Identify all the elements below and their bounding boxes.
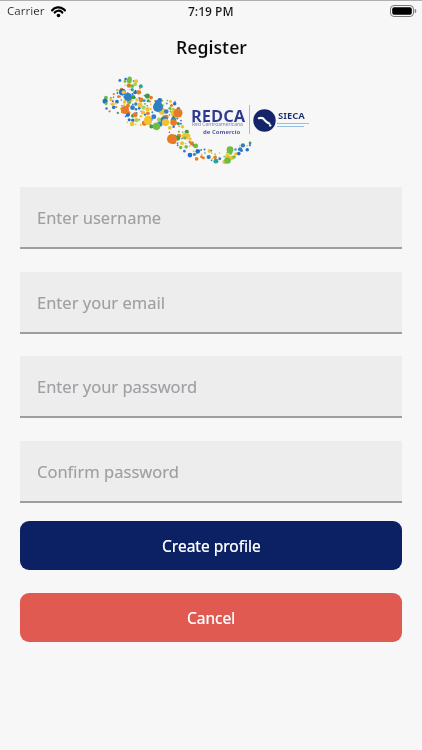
staticText: Confirm password [37,460,179,482]
button[interactable]: Confirm password [20,441,402,501]
staticText: Red Centroamericana [192,121,243,128]
staticText: Register [176,35,247,59]
staticText: REDCA [191,104,246,126]
staticText: Enter your email [37,291,165,313]
button[interactable]: Create profile [20,521,402,570]
staticText: Enter your password [37,375,198,397]
staticText: 7:19 PM [188,3,234,19]
staticText: Carrier [7,3,45,19]
staticText: Enter username [37,206,162,228]
button[interactable]: Enter your email [20,272,402,332]
button[interactable]: Enter your password [20,356,402,416]
staticText: Cancel [187,607,236,628]
staticText: de Comercio [203,128,241,136]
staticText: SIECA [278,109,305,122]
button[interactable]: Cancel [20,593,402,642]
button[interactable]: Enter username [20,187,402,247]
staticText: Create profile [162,535,261,556]
